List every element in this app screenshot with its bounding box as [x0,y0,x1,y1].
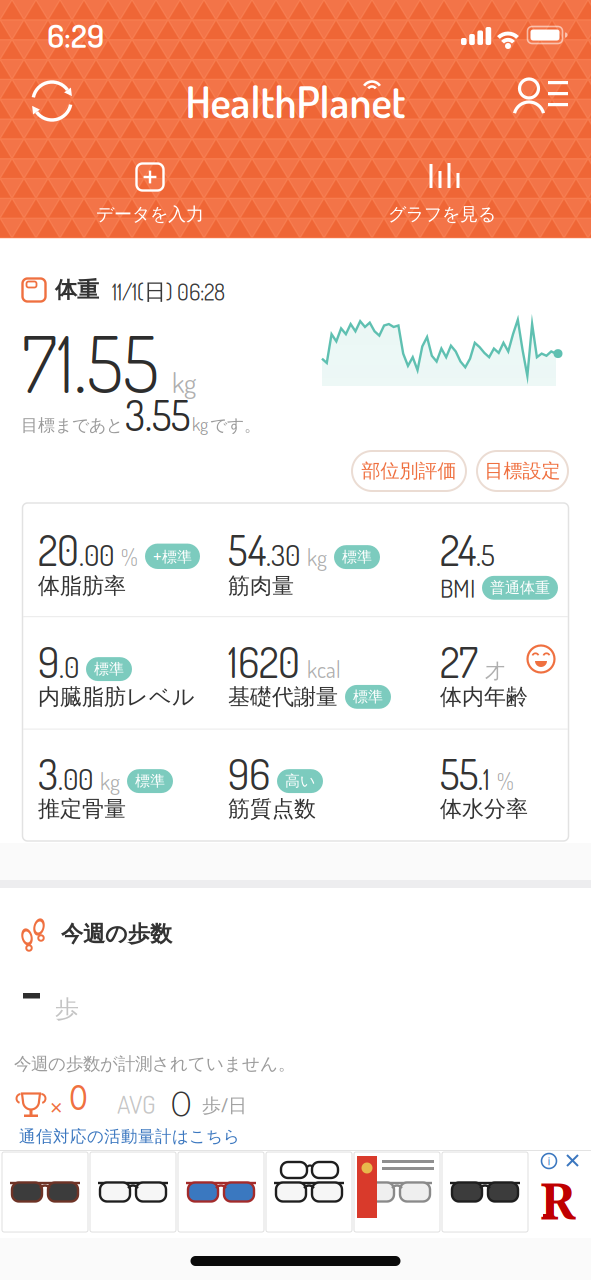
button[interactable]: 広告 4 [266,1152,352,1232]
staticText: 今週の歩数 [61,920,172,948]
staticText: 9 [38,636,59,688]
staticText: 96 [228,748,270,800]
staticText: 55 [440,748,478,800]
staticText: .00 [79,536,114,573]
staticText: 体水分率 [440,795,528,823]
staticText: 標準 [342,548,372,567]
staticText: BMI [440,572,475,604]
button[interactable]: 広告 5 [354,1152,440,1232]
staticText: 内臓脂肪レベル [38,683,195,711]
staticText: 今週の歩数が計測されていません。 [14,1053,295,1075]
staticText: 通信対応の活動量計はこちら [19,1126,240,1147]
staticText: 3.55 [125,389,190,441]
staticText: 3 [38,748,58,800]
staticText: 24 [440,524,476,576]
button[interactable]: Account [513,75,569,127]
staticText: 筋質点数 [228,795,316,823]
staticText: kg [307,543,327,571]
staticText: +標準 [153,546,192,566]
button[interactable]: 通信対応の活動量計はこちら [19,1126,240,1147]
staticText: kg [172,365,196,399]
staticText: 目標まであと [21,415,123,436]
staticText: 才 [485,659,505,684]
staticText: HealthPlanet [185,74,405,128]
staticText: 高い [285,772,315,791]
staticText: .00 [58,760,93,797]
staticText: R [540,1166,576,1234]
staticText: 20 [38,524,79,576]
staticText: 標準 [135,772,165,791]
button[interactable]: 広告 6 [442,1152,528,1232]
button[interactable]: 目標設定 [477,451,568,491]
staticText: 歩/日 [202,1092,247,1118]
staticText: kg [192,413,208,435]
staticText: .30 [266,536,300,573]
staticText: 1620 [228,636,300,688]
staticText: 標準 [353,687,383,706]
staticText: 54 [228,524,266,576]
button[interactable]: 広告 3 [178,1152,264,1232]
staticText: 目標設定 [484,459,560,483]
staticText: 筋肉量 [228,572,294,600]
staticText: です。 [210,415,261,436]
staticText: 6:29 [47,15,104,55]
staticText: 推定骨量 [38,795,126,823]
staticText: .0 [59,648,79,685]
staticText: AVG [117,1088,156,1120]
staticText: % [121,543,138,571]
staticText: .5 [476,536,495,573]
staticText: 部位別評価 [361,459,456,483]
staticText: 体内年齢 [440,683,528,711]
button[interactable]: データを入力 [76,163,224,229]
button[interactable]: 部位別評価 [352,451,466,491]
button[interactable]: Ad info [540,1152,558,1170]
button[interactable]: グラフを見る [368,163,516,229]
staticText: kg [100,767,120,795]
staticText: 歩 [55,994,79,1024]
staticText: 0 [171,1082,191,1124]
staticText: × [50,1092,63,1122]
staticText: 71.55 [22,314,159,411]
button[interactable]: 広告 1 [2,1152,88,1232]
staticText: % [497,767,514,795]
staticText: 0 [69,1081,88,1118]
staticText: 11/1(日) 06:28 [112,278,225,306]
staticText: kcal [307,655,341,683]
staticText: 27 [440,636,478,688]
staticText: 普通体重 [490,578,550,597]
staticText: 体重 [55,276,99,304]
staticText: データを入力 [96,203,204,226]
staticText: 体脂肪率 [38,572,126,600]
staticText: .1 [478,760,490,797]
staticText: 標準 [94,660,124,679]
staticText: 基礎代謝量 [228,683,338,711]
button[interactable]: Close ad [567,1155,579,1167]
staticText: i [547,1153,550,1168]
button[interactable]: Reload [26,75,78,127]
staticText: グラフを見る [388,203,496,226]
button[interactable]: 広告 2 [90,1152,176,1232]
